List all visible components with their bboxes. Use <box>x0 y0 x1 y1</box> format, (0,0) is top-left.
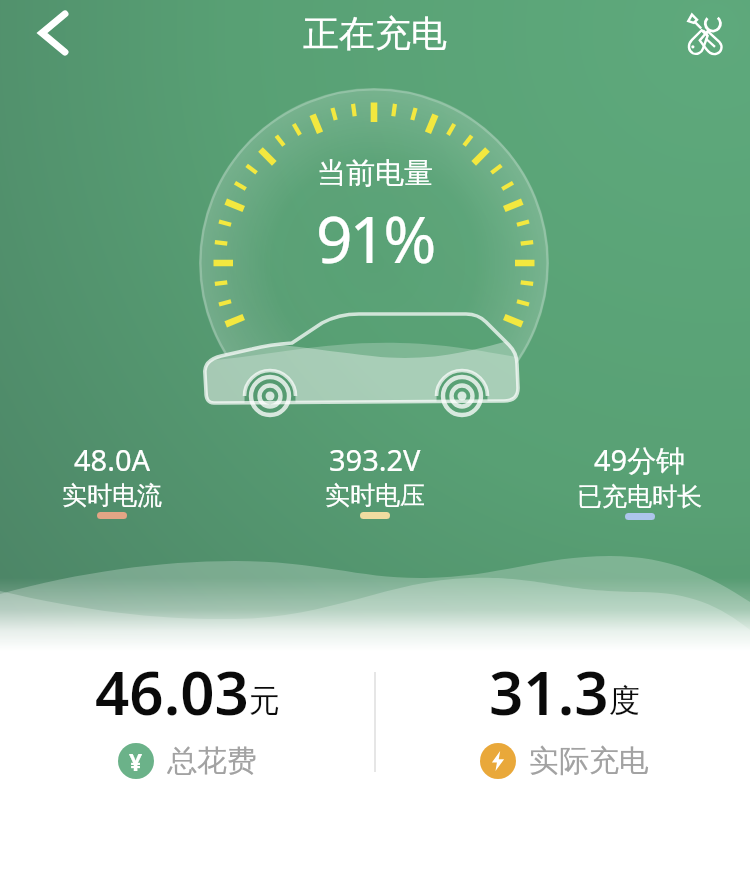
button[interactable]: 49分钟 <box>524 440 750 520</box>
staticText: 实时电流 <box>62 480 162 511</box>
staticText: 已充电时长 <box>577 481 702 512</box>
staticText: 46.03 <box>95 651 249 733</box>
staticText: 49分钟 <box>594 440 686 480</box>
staticText: 48.0A <box>74 440 151 479</box>
staticText: 正在充电 <box>303 11 447 56</box>
staticText: ¥ <box>129 746 143 777</box>
button[interactable]: 48.0A <box>0 440 227 519</box>
staticText: 实时电压 <box>325 480 425 511</box>
staticText: 31.3 <box>489 651 609 733</box>
button[interactable]: Tools <box>680 10 726 56</box>
button[interactable]: 31.3 <box>404 651 724 780</box>
staticText: 度 <box>609 681 640 720</box>
button[interactable]: 393.2V <box>260 440 490 519</box>
button[interactable]: Back <box>30 10 76 56</box>
staticText: 393.2V <box>329 440 421 479</box>
staticText: 当前电量 <box>317 155 433 192</box>
button[interactable]: 46.03 <box>27 651 347 780</box>
staticText: 元 <box>249 681 280 720</box>
staticText: 91% <box>316 195 434 282</box>
staticText: 实际充电 <box>529 742 649 780</box>
staticText: 总花费 <box>167 742 257 780</box>
